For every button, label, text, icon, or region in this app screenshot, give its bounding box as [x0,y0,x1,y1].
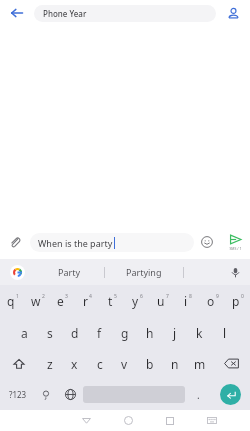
button[interactable]: w [25,285,50,317]
button[interactable]: v [112,348,137,379]
button[interactable]: r [75,285,100,317]
staticText: j [173,325,177,341]
button[interactable]: Party [34,259,104,285]
staticText: 3 [65,293,68,300]
button[interactable]: m [187,348,212,379]
staticText: n [171,356,179,372]
button[interactable]: b [137,348,162,379]
staticText: z [47,356,53,372]
button[interactable]: Phone Year [34,5,216,22]
staticText: 9 [216,293,219,300]
button[interactable]: c [87,348,112,379]
staticText: c [97,356,103,372]
staticText: t [108,293,113,309]
button[interactable]: l [212,317,237,348]
staticText: y [132,293,139,309]
staticText: Partying [126,266,162,278]
staticText: SMS / 1 [229,246,242,251]
button[interactable]: i [175,285,200,317]
staticText: 0 [241,293,244,300]
staticText: w [31,293,41,309]
staticText: q [7,293,15,309]
button[interactable]: f [87,317,112,348]
button[interactable]: Change language [57,379,83,410]
staticText: ?123 [9,389,27,400]
button[interactable]: ?123 [0,379,35,410]
button[interactable]: Back [0,0,34,26]
staticText: x [71,356,78,372]
button[interactable]: Shift [0,348,37,379]
button[interactable]: e [50,285,75,317]
button[interactable]: Contact [216,0,250,26]
button[interactable]: x [62,348,87,379]
staticText: v [121,356,128,372]
staticText: 5 [114,293,117,300]
staticText: . [197,388,200,402]
button[interactable]: Home [107,410,149,431]
staticText: 7 [166,293,169,300]
button[interactable]: Partying [105,259,183,285]
staticText: 1 [16,293,19,300]
staticText: f [97,325,102,341]
button[interactable]: Voice input [220,259,250,285]
button[interactable]: a [12,317,37,348]
staticText: s [47,325,53,341]
button[interactable]: Keyboard active [191,410,233,431]
staticText: u [157,293,165,309]
button[interactable]: t [100,285,125,317]
staticText: 2 [42,293,45,300]
button[interactable]: . [185,379,211,410]
staticText: d [71,325,79,341]
button[interactable]: Back [66,410,107,431]
staticText: r [83,293,88,309]
staticText: Party [58,266,81,278]
button[interactable]: n [162,348,187,379]
button[interactable]: When is the party [30,233,194,252]
button[interactable]: h [137,317,162,348]
staticText: i [184,293,188,309]
button[interactable]: Emoji and comma [35,379,57,410]
button[interactable]: j [162,317,187,348]
button[interactable]: Google [0,259,34,285]
staticText: g [121,325,129,341]
button[interactable]: z [37,348,62,379]
staticText: o [207,293,215,309]
staticText: k [196,325,203,341]
staticText: m [194,356,206,372]
button[interactable]: p [225,285,250,317]
button[interactable]: g [112,317,137,348]
button[interactable]: q [0,285,25,317]
button[interactable]: Emoji [194,225,220,259]
staticText: b [146,356,154,372]
button[interactable]: d [62,317,87,348]
button[interactable]: o [200,285,225,317]
staticText: 8 [189,293,192,300]
button[interactable]: s [37,317,62,348]
staticText: 4 [89,293,92,300]
staticText: Phone Year [43,8,87,19]
button[interactable]: Attach [0,225,30,259]
button[interactable]: Send [220,225,250,259]
staticText: l [223,325,227,341]
button[interactable]: Recent apps [149,410,191,431]
button[interactable]: Backspace [212,348,250,379]
staticText: a [21,325,28,341]
staticText: h [146,325,154,341]
staticText: When is the party [38,237,113,249]
button[interactable]: y [125,285,150,317]
button[interactable]: Enter [211,379,250,410]
staticText: 6 [140,293,143,300]
button[interactable]: u [150,285,175,317]
staticText: p [232,293,240,309]
staticText: e [57,293,64,309]
button[interactable]: k [187,317,212,348]
